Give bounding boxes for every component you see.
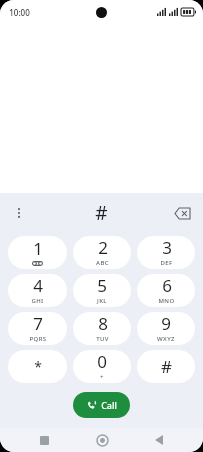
button[interactable]: 1 (8, 236, 67, 269)
button[interactable]: # (137, 350, 195, 383)
staticText: PQRS (29, 335, 47, 343)
staticText: 6 (162, 274, 172, 297)
button[interactable]: * (8, 350, 67, 383)
button[interactable]: Backspace (167, 198, 197, 228)
button[interactable]: Back (146, 428, 172, 452)
button[interactable]: 9 (137, 312, 195, 345)
button[interactable]: Home (89, 428, 115, 452)
button[interactable]: 4 (8, 274, 67, 307)
staticText: 7 (33, 312, 43, 335)
button[interactable]: More options (4, 198, 34, 228)
staticText: 3 (162, 236, 172, 259)
staticText: 4 (33, 274, 43, 297)
staticText: 10:00 (9, 7, 30, 18)
button[interactable]: 8 (73, 312, 131, 345)
staticText: ABC (96, 259, 109, 267)
staticText: # (161, 355, 172, 378)
staticText: 8 (98, 312, 108, 335)
staticText: # (95, 200, 108, 226)
button[interactable]: 2 (73, 236, 131, 269)
button[interactable]: Call (73, 392, 130, 418)
button[interactable]: 3 (137, 236, 195, 269)
staticText: TUV (96, 335, 109, 343)
button[interactable]: 0 (73, 350, 131, 383)
button[interactable]: 5 (73, 274, 131, 307)
staticText: JKL (97, 297, 107, 305)
staticText: * (34, 357, 42, 376)
button[interactable]: Recent apps (31, 428, 57, 452)
button[interactable]: 7 (8, 312, 67, 345)
button[interactable]: 6 (137, 274, 195, 307)
staticText: 2 (98, 236, 108, 259)
staticText: Call (101, 399, 117, 411)
staticText: 5 (97, 274, 107, 297)
staticText: GHI (31, 297, 44, 305)
staticText: 0 (97, 350, 107, 373)
staticText: WXYZ (157, 335, 175, 343)
staticText: + (100, 373, 104, 381)
staticText: MNO (158, 297, 175, 305)
staticText: DEF (160, 259, 173, 267)
staticText: 1 (33, 237, 43, 260)
staticText: 9 (161, 312, 171, 335)
